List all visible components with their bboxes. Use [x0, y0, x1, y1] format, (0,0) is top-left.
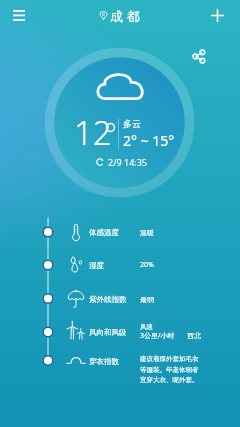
- staticText: 多云: [123, 118, 141, 129]
- staticText: 风速: [140, 323, 153, 331]
- button[interactable]: 风向和风级: [0, 318, 240, 346]
- staticText: 体感温度: [89, 228, 119, 237]
- staticText: 3公里/小时: [140, 331, 175, 341]
- staticText: 温暖: [140, 228, 154, 237]
- staticText: 最弱: [140, 295, 154, 304]
- button[interactable]: 体感温度: [0, 218, 240, 246]
- staticText: 12: [74, 110, 112, 155]
- staticText: 穿衣指数: [89, 357, 119, 366]
- button[interactable]: 湿度: [0, 251, 240, 279]
- staticText: 紫外线指数: [89, 295, 127, 304]
- staticText: 建议着厚外套加毛衣等服装。年老体弱者宜穿大衣、呢外套。: [140, 355, 199, 383]
- button[interactable]: 成 都: [100, 4, 140, 27]
- staticText: 西北: [187, 331, 201, 340]
- staticText: 风向和风级: [89, 328, 127, 337]
- button[interactable]: 紫外线指数: [0, 285, 240, 313]
- staticText: 2° ~ 15°: [123, 131, 175, 150]
- staticText: 20%: [140, 260, 154, 270]
- button[interactable]: 穿衣指数: [0, 347, 240, 375]
- button[interactable]: Add city: [206, 4, 229, 27]
- button[interactable]: Menu: [7, 4, 30, 27]
- staticText: 成 都: [110, 7, 140, 25]
- button[interactable]: 2/9 14:35: [96, 155, 147, 169]
- button[interactable]: Share: [188, 45, 210, 67]
- staticText: 湿度: [89, 261, 104, 270]
- staticText: 2/9 14:35: [108, 156, 147, 168]
